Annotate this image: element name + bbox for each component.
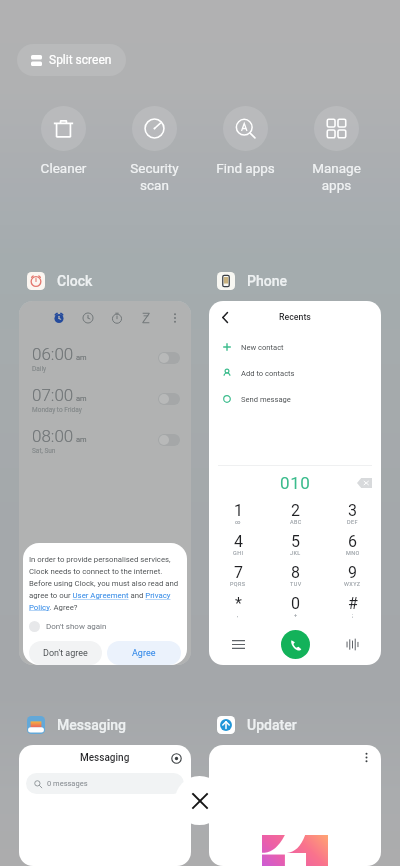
staticText: + (294, 612, 298, 618)
button[interactable]: More options (359, 750, 374, 765)
staticText: # (348, 594, 358, 613)
staticText: Clock (57, 273, 93, 289)
staticText: 8 (291, 563, 300, 582)
button[interactable]: Settings (169, 751, 184, 766)
staticText: Recents (279, 312, 311, 322)
button[interactable]: More options (209, 745, 381, 866)
button[interactable]: Toggle alarm (158, 434, 180, 446)
button[interactable]: Cleaner (18, 106, 109, 176)
button[interactable]: Add to contacts (209, 360, 381, 386)
staticText: , (237, 612, 239, 618)
button[interactable]: 06:00 (19, 301, 191, 665)
button[interactable]: Find apps (200, 106, 291, 176)
button[interactable]: Messaging (19, 745, 191, 866)
button[interactable]: Phone (217, 272, 287, 290)
staticText: Phone (247, 273, 287, 289)
staticText: 4 (234, 532, 243, 551)
button[interactable]: 8 (267, 562, 324, 593)
staticText: * (235, 594, 242, 613)
staticText: 07:00 (32, 385, 74, 405)
button[interactable]: 0 messages (26, 773, 184, 794)
staticText: DEF (347, 519, 358, 525)
button[interactable]: Back (209, 301, 381, 665)
staticText: ∞ (235, 519, 242, 525)
staticText: Don't show again (46, 622, 107, 631)
button[interactable]: Back (217, 309, 233, 325)
staticText: 06:00 (32, 344, 74, 364)
button[interactable]: Backspace (357, 478, 372, 488)
staticText: 3 (348, 501, 357, 520)
staticText: 7 (234, 563, 243, 582)
staticText: 9 (348, 563, 357, 582)
button[interactable]: 0 (267, 593, 324, 624)
staticText: am (76, 394, 87, 403)
staticText: 1 (234, 501, 243, 520)
staticText: Send message (241, 395, 291, 404)
button[interactable]: Don't agree (29, 641, 102, 665)
button[interactable]: 5 (267, 531, 324, 562)
staticText: Manage apps (291, 160, 382, 194)
button[interactable]: Clock (27, 272, 93, 290)
staticText: Monday to Friday (32, 406, 82, 414)
staticText: Find apps (200, 160, 291, 176)
button[interactable]: 08:00 (19, 424, 191, 456)
staticText: 08:00 (32, 426, 74, 446)
staticText: Messaging (57, 717, 127, 733)
button[interactable]: 2 (267, 500, 324, 531)
button[interactable]: 6 (324, 531, 381, 562)
staticText: Cleaner (18, 160, 109, 176)
button[interactable]: # (324, 593, 381, 624)
button[interactable]: 9 (324, 562, 381, 593)
staticText: am (76, 353, 87, 362)
button[interactable]: New contact (209, 334, 381, 360)
staticText: am (76, 435, 87, 444)
staticText: New contact (241, 343, 284, 352)
staticText: 0 messages (47, 779, 88, 788)
button[interactable]: 3 (324, 500, 381, 531)
staticText: PQRS (230, 581, 246, 587)
button[interactable]: Close all (175, 776, 224, 825)
staticText: Sat, Sun (32, 447, 56, 455)
button[interactable]: 7 (209, 562, 267, 593)
button[interactable]: Updater (217, 716, 297, 734)
button[interactable]: Voice search (346, 638, 359, 651)
button[interactable]: 07:00 (19, 383, 191, 415)
staticText: 5 (291, 532, 300, 551)
staticText: Messaging (80, 752, 130, 764)
button[interactable]: 06:00 (19, 342, 191, 374)
button[interactable]: Agree (107, 641, 181, 665)
staticText: 2 (291, 501, 300, 520)
button[interactable]: Toggle alarm (158, 393, 180, 405)
button[interactable]: Messaging (27, 716, 127, 734)
staticText: Don't agree (43, 648, 88, 659)
button[interactable]: Dial pad options (232, 638, 245, 651)
button[interactable]: Send message (209, 386, 381, 412)
staticText: ; (352, 612, 354, 618)
staticText: GHI (233, 550, 244, 556)
staticText: Daily (32, 365, 47, 373)
button[interactable]: Security scan (109, 106, 200, 194)
button[interactable]: Split screen (17, 44, 126, 76)
staticText: ABC (290, 519, 302, 525)
staticText: 0 (291, 594, 300, 613)
staticText: WXYZ (344, 581, 361, 587)
staticText: MNO (346, 550, 360, 556)
button[interactable]: Manage apps (291, 106, 382, 194)
staticText: Agree (132, 648, 156, 659)
staticText: 6 (348, 532, 357, 551)
button[interactable]: 1 (209, 500, 267, 531)
button[interactable]: Call (281, 630, 310, 659)
staticText: Security scan (109, 160, 200, 194)
staticText: JKL (290, 550, 301, 556)
staticText: Add to contacts (241, 369, 295, 378)
staticText: 010 (280, 473, 311, 493)
staticText: Split screen (49, 53, 112, 67)
button[interactable]: * (209, 593, 267, 624)
staticText: Updater (247, 717, 297, 733)
button[interactable]: 4 (209, 531, 267, 562)
staticText: In order to provide personalised service… (29, 555, 181, 612)
button[interactable]: Toggle alarm (158, 352, 180, 364)
staticText: TUV (290, 581, 302, 587)
button[interactable]: Don't show again (29, 621, 107, 632)
